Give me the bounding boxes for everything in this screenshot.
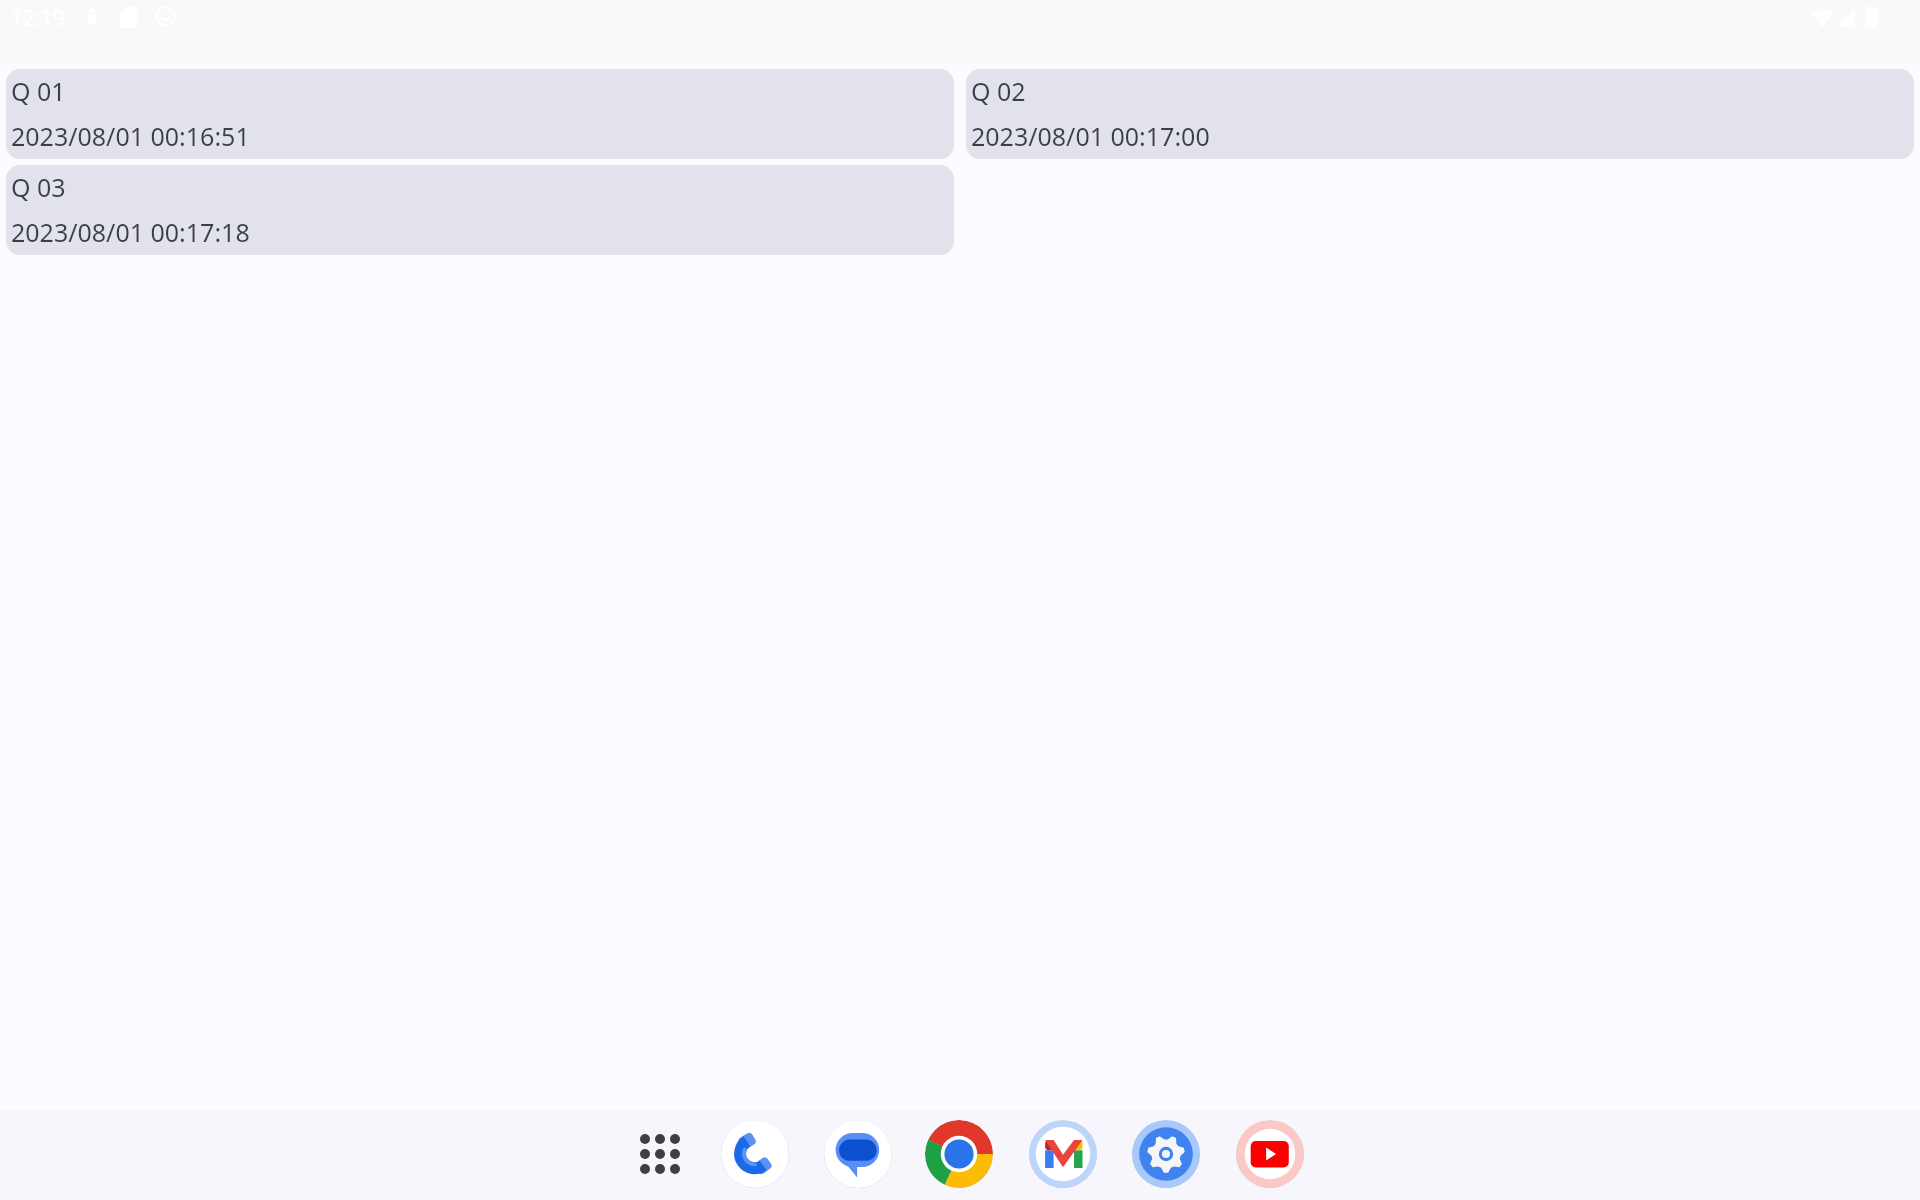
button[interactable]: Q 03: [6, 165, 954, 255]
staticText: 2023/08/01 00:17:00: [971, 119, 1210, 153]
staticText: Q 02: [971, 74, 1026, 108]
staticText: Q 03: [11, 170, 66, 204]
staticText: 2023/08/01 00:17:18: [11, 215, 250, 249]
button[interactable]: Chrome: [925, 1120, 993, 1188]
button[interactable]: Settings: [1132, 1120, 1200, 1188]
button[interactable]: All apps: [626, 1120, 694, 1188]
button[interactable]: Phone: [721, 1120, 789, 1188]
staticText: 2023/08/01 00:16:51: [11, 119, 250, 153]
staticText: Q 01: [11, 74, 66, 108]
button[interactable]: Q 02: [966, 69, 1914, 159]
button[interactable]: Gmail: [1029, 1120, 1097, 1188]
button[interactable]: Q 01: [6, 69, 954, 159]
button[interactable]: Messages: [824, 1120, 892, 1188]
button[interactable]: YouTube: [1236, 1120, 1304, 1188]
